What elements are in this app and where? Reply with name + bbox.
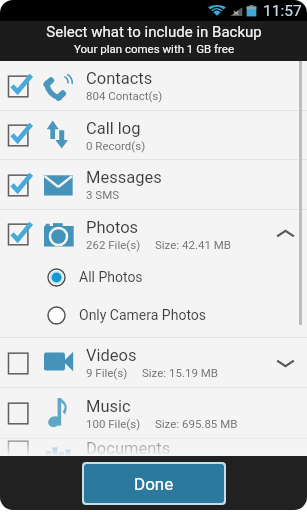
staticText: All Photos: [79, 269, 143, 285]
staticText: Your plan comes with 1 GB free: [74, 42, 234, 55]
staticText: 0 Record(s): [86, 139, 146, 152]
button[interactable]: Contacts: [0, 61, 307, 110]
staticText: Music: [86, 397, 131, 416]
staticText: Size: 42.41 MB: [155, 238, 231, 251]
staticText: Size: 15.19 MB: [142, 366, 218, 379]
staticText: Select what to include in Backup: [46, 23, 262, 41]
staticText: Only Camera Photos: [79, 307, 207, 323]
staticText: 100 File(s): [86, 417, 141, 430]
staticText: Photos: [86, 218, 139, 237]
button[interactable]: Done: [84, 464, 224, 503]
staticText: Messages: [86, 168, 162, 187]
button[interactable]: Music: [0, 388, 307, 438]
button[interactable]: Messages: [0, 160, 307, 209]
button[interactable]: Videos: [0, 338, 307, 387]
button[interactable]: Expand: [263, 338, 307, 387]
staticText: 9 File(s): [86, 366, 128, 379]
staticText: 262 File(s): [86, 238, 141, 251]
button[interactable]: Collapse: [263, 210, 307, 258]
staticText: Documents: [86, 439, 171, 456]
button[interactable]: Documents: [0, 439, 307, 456]
staticText: Done: [134, 474, 174, 494]
staticText: 11:57: [263, 2, 302, 20]
button[interactable]: Only Camera Photos: [0, 296, 307, 334]
staticText: Videos: [86, 346, 137, 365]
staticText: Size: 695.85 MB: [155, 417, 238, 430]
button[interactable]: All Photos: [0, 258, 307, 296]
staticText: Call log: [86, 119, 141, 138]
staticText: Contacts: [86, 69, 153, 88]
staticText: 3 SMS: [86, 188, 120, 201]
button[interactable]: Call log: [0, 111, 307, 159]
staticText: 804 Contact(s): [86, 89, 163, 102]
button[interactable]: Photos: [0, 210, 307, 258]
